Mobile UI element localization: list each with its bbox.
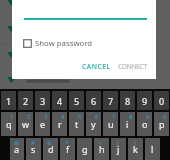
staticText: 2 (27, 113, 31, 120)
staticText: r (58, 118, 62, 130)
button[interactable]: CONNECT (115, 58, 150, 75)
staticText: o (142, 118, 148, 130)
staticText: d (48, 143, 54, 155)
button[interactable]: 4 (52, 91, 67, 110)
button[interactable]: 0 (154, 91, 169, 110)
button[interactable]: y (86, 112, 101, 136)
staticText: g (82, 143, 88, 155)
staticText: 0 (163, 113, 167, 120)
button[interactable]: g (77, 138, 92, 160)
staticText: h (99, 143, 105, 155)
staticText: t (75, 118, 79, 130)
button[interactable]: w (18, 112, 33, 136)
button[interactable]: f (60, 138, 75, 160)
button[interactable]: 1 (1, 91, 16, 110)
button[interactable]: e (35, 112, 50, 136)
staticText: 4 (57, 95, 63, 107)
button[interactable]: q (1, 112, 16, 136)
button[interactable]: r (52, 112, 67, 136)
button[interactable]: k (128, 138, 143, 160)
staticText: 2 (23, 95, 29, 107)
button[interactable]: d (43, 138, 58, 160)
button[interactable]: CANCEL (79, 58, 114, 75)
staticText: 5 (78, 113, 82, 120)
staticText: i (126, 118, 129, 130)
button[interactable]: 9 (137, 91, 152, 110)
staticText: 3 (44, 113, 48, 120)
staticText: a (14, 143, 20, 155)
staticText: 4 (61, 113, 65, 120)
staticText: w (22, 118, 30, 130)
staticText: 7 (108, 95, 114, 107)
staticText: 6 (91, 95, 97, 107)
button[interactable]: 2 (18, 91, 33, 110)
button[interactable]: t (69, 112, 84, 136)
staticText: k (133, 143, 138, 155)
staticText: ( (117, 139, 119, 146)
staticText: # (31, 139, 35, 146)
staticText: @ (14, 139, 19, 146)
staticText: e (40, 118, 46, 130)
staticText: 5 (74, 95, 80, 107)
staticText: s (31, 143, 36, 155)
button[interactable]: Show password (22, 34, 93, 52)
staticText: 8 (125, 95, 131, 107)
staticText: + (99, 139, 103, 146)
button[interactable]: 8 (120, 91, 135, 110)
staticText: f (66, 143, 70, 155)
staticText: 1 (6, 95, 12, 107)
staticText: - (83, 139, 85, 146)
staticText: u (108, 118, 114, 130)
staticText: CONNECT (118, 62, 147, 71)
staticText: 0 (159, 95, 165, 107)
staticText: q (6, 118, 12, 130)
button[interactable]: h (94, 138, 109, 160)
staticText: 1 (10, 113, 14, 120)
staticText: ) (134, 139, 136, 146)
staticText: y (91, 118, 96, 130)
staticText: 9 (142, 95, 148, 107)
button[interactable]: a (10, 138, 24, 160)
staticText: p (159, 118, 165, 130)
staticText: CANCEL (82, 62, 111, 71)
staticText: 3 (40, 95, 46, 107)
button[interactable]: j (111, 138, 126, 160)
staticText: _ (150, 139, 153, 146)
button[interactable]: i (120, 112, 135, 136)
button[interactable]: p (154, 112, 169, 136)
button[interactable]: u (103, 112, 118, 136)
button[interactable]: 7 (103, 91, 118, 110)
staticText: l (151, 143, 154, 155)
staticText: 7 (112, 113, 116, 120)
staticText: j (117, 143, 120, 155)
button[interactable]: s (26, 138, 41, 160)
staticText: 8 (129, 113, 133, 120)
staticText: 6 (95, 113, 99, 120)
button[interactable]: 6 (86, 91, 101, 110)
staticText: * (65, 139, 69, 146)
staticText: Show password (35, 38, 93, 49)
staticText: & (47, 139, 52, 146)
staticText: 9 (146, 113, 150, 120)
button[interactable]: 5 (69, 91, 84, 110)
button[interactable]: l (145, 138, 160, 160)
button[interactable]: o (137, 112, 152, 136)
button[interactable]: 3 (35, 91, 50, 110)
